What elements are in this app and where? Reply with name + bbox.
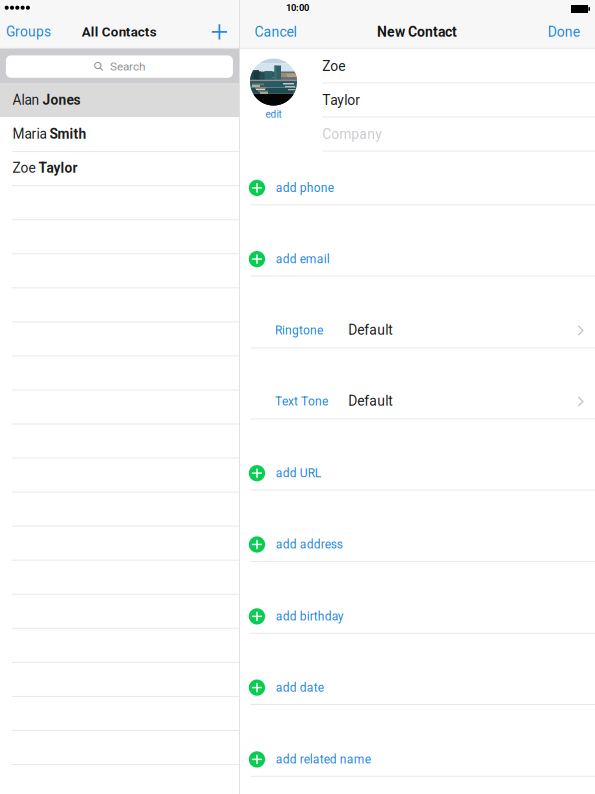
button[interactable]: Search — [0, 0, 595, 794]
staticText: Smith — [49, 126, 86, 142]
button[interactable]: Alan — [0, 0, 595, 794]
staticText: add address — [276, 537, 343, 552]
staticText: Zoe — [322, 58, 345, 74]
staticText: Cancel — [254, 24, 296, 40]
staticText: add URL — [276, 466, 321, 480]
staticText: Jones — [42, 92, 80, 108]
button[interactable]: add phone — [0, 0, 595, 794]
button[interactable]: Cancel — [0, 0, 595, 794]
staticText: Text Tone — [275, 394, 328, 408]
button[interactable]: Done — [0, 0, 595, 794]
button[interactable]: Text Tone — [0, 0, 595, 794]
staticText: Zoe — [12, 160, 38, 176]
button[interactable]: Add contact — [0, 0, 595, 794]
button[interactable]: Maria — [0, 0, 595, 794]
staticText: Taylor — [38, 160, 77, 176]
button[interactable]: Edit photo — [0, 0, 595, 794]
button[interactable]: add address — [0, 0, 595, 794]
staticText: Maria — [12, 126, 49, 142]
button[interactable]: Zoe — [0, 0, 595, 794]
staticText: All Contacts — [82, 24, 157, 40]
staticText: New Contact — [377, 24, 457, 40]
staticText: Company — [322, 126, 382, 142]
button[interactable]: add URL — [0, 0, 595, 794]
staticText: add phone — [276, 181, 334, 195]
staticText: 10:00 — [286, 2, 309, 13]
staticText: Taylor — [322, 92, 360, 108]
staticText: edit — [265, 108, 281, 120]
staticText: Done — [548, 24, 580, 40]
staticText: Default — [348, 393, 393, 409]
staticText: Alan — [12, 92, 42, 108]
button[interactable]: Ringtone — [0, 0, 595, 794]
staticText: add email — [276, 252, 330, 266]
staticText: add date — [276, 681, 324, 695]
button[interactable]: add related name — [0, 0, 595, 794]
staticText: add birthday — [276, 609, 344, 623]
staticText: Search — [110, 60, 145, 73]
button[interactable]: Groups — [0, 0, 595, 794]
button[interactable]: add birthday — [0, 0, 595, 794]
staticText: Default — [348, 322, 393, 338]
button[interactable]: add email — [0, 0, 595, 794]
staticText: Groups — [6, 24, 51, 40]
staticText: add related name — [276, 752, 371, 766]
button[interactable]: add date — [0, 0, 595, 794]
staticText: Ringtone — [275, 323, 323, 337]
